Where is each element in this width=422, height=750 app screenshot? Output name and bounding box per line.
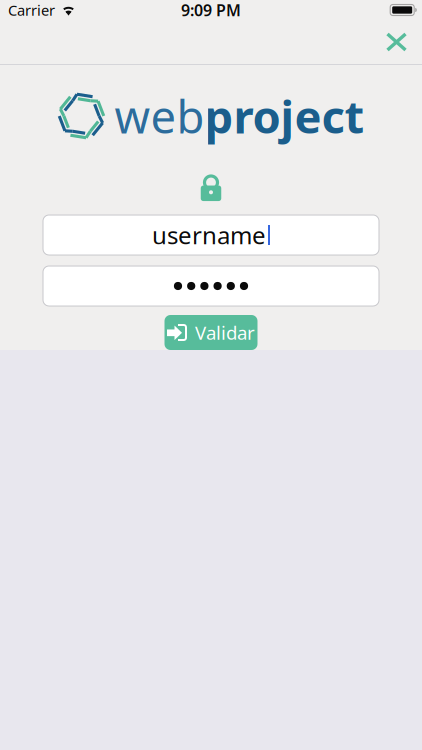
staticText: Carrier: [8, 0, 55, 20]
staticText: Validar: [195, 320, 255, 345]
staticText: 9:09 PM: [181, 0, 241, 21]
button[interactable]: Validar: [164, 315, 257, 350]
button[interactable]: Close: [371, 20, 422, 64]
staticText: project: [204, 86, 364, 146]
staticText: username: [152, 219, 266, 251]
staticText: web: [114, 86, 204, 146]
